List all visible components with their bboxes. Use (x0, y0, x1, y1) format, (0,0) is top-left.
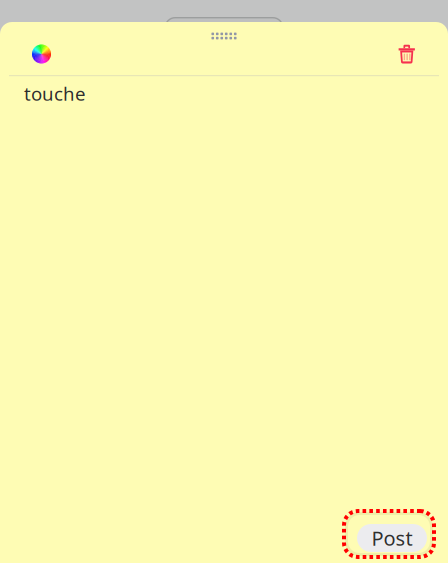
staticText: Post (371, 525, 412, 551)
button[interactable]: Colour (0, 23, 65, 73)
button[interactable]: touche (0, 76, 448, 293)
staticText: touche (24, 81, 86, 106)
button[interactable]: Post (342, 509, 436, 559)
button[interactable]: Delete (384, 23, 448, 73)
